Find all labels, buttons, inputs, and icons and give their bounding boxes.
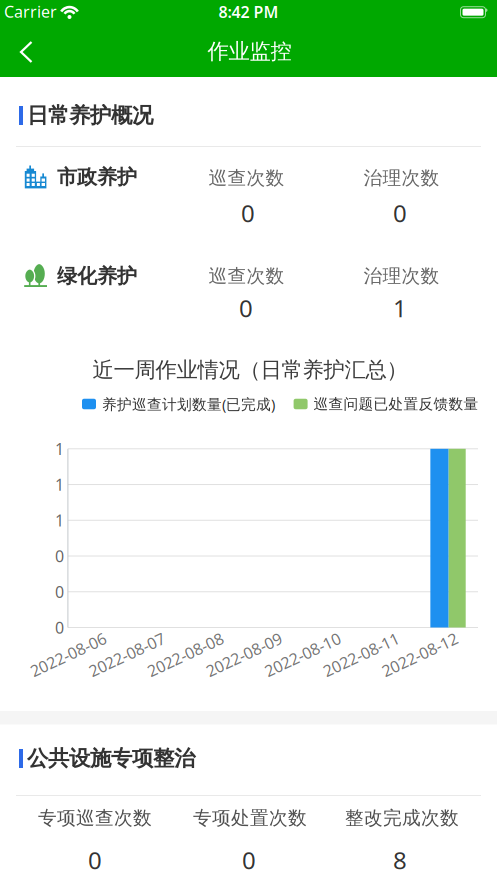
staticText: 2022-08-12 [379,644,461,665]
button[interactable]: 养护巡查计划数量(已完成) [82,394,275,414]
staticText: 2022-08-08 [144,644,226,665]
staticText: 专项处置次数 [193,806,307,829]
staticText: 0 [55,617,64,638]
staticText: 巡查次数 [208,166,284,189]
staticText: Carrier [4,1,57,22]
staticText: 8 [393,844,407,876]
staticText: 0 [55,545,64,567]
staticText: 治理次数 [363,264,439,287]
staticText: 0 [239,292,253,324]
staticText: 0 [242,844,256,876]
staticText: 近一周作业情况（日常养护汇总） [92,357,407,383]
staticText: 巡查次数 [208,264,284,287]
staticText: 0 [241,197,255,229]
staticText: 绿化养护 [57,264,137,288]
staticText: 治理次数 [363,166,439,189]
staticText: 2022-08-10 [261,644,343,665]
staticText: 整改完成次数 [345,806,459,829]
staticText: 养护巡查计划数量(已完成) [102,394,275,414]
staticText: 0 [393,197,407,229]
staticText: 0 [88,844,102,876]
staticText: 0 [55,581,64,602]
staticText: 作业监控 [207,38,291,64]
staticText: 市政养护 [57,165,137,189]
staticText: 1 [393,292,407,324]
staticText: 1 [55,438,64,459]
staticText: 专项巡查次数 [38,806,152,829]
staticText: 2022-08-09 [203,644,285,665]
button[interactable]: 巡查问题已处置反馈数量 [294,395,479,413]
staticText: 2022-08-06 [27,644,109,665]
staticText: 2022-08-07 [86,644,168,665]
staticText: 公共设施专项整治 [27,745,195,772]
staticText: 2022-08-11 [320,644,402,665]
staticText: 1 [55,474,64,495]
button[interactable] [4,30,48,74]
staticText: 8:42 PM [218,1,278,22]
staticText: 巡查问题已处置反馈数量 [314,395,479,413]
staticText: 日常养护概况 [27,102,153,129]
staticText: 1 [55,510,64,531]
